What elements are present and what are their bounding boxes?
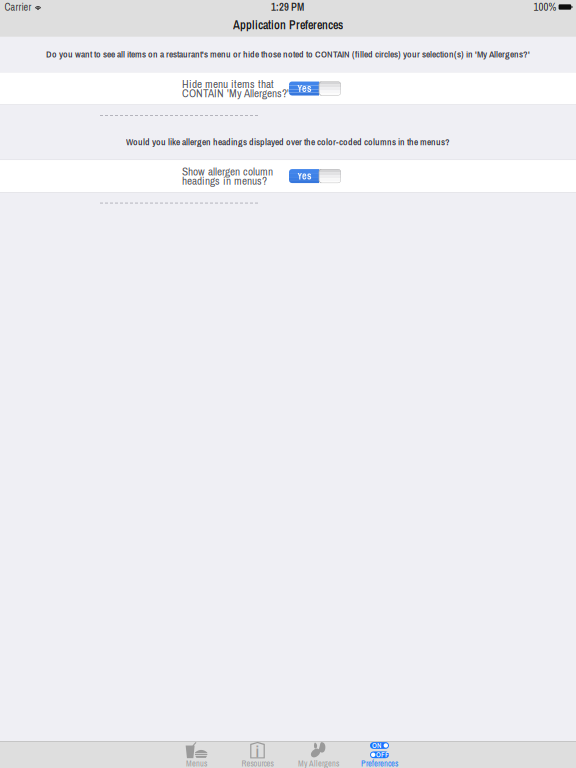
staticText: Preferences: [361, 758, 398, 768]
staticText: My Allergens: [298, 758, 339, 768]
staticText: Yes: [297, 169, 311, 183]
button[interactable]: i: [227, 741, 288, 768]
staticText: i: [255, 741, 259, 763]
staticText: ON: [372, 740, 381, 750]
button[interactable]: Menus: [166, 741, 227, 768]
staticText: Application Preferences: [233, 17, 343, 33]
button[interactable]: ON: [349, 741, 410, 768]
staticText: headings in menus?: [182, 173, 267, 188]
staticText: Hide menu items that: [182, 76, 274, 91]
staticText: Carrier: [4, 0, 31, 14]
staticText: Show allergen column: [182, 164, 273, 179]
button[interactable]: Show allergen column: [0, 160, 576, 192]
staticText: Yes: [297, 81, 311, 95]
staticText: Resources: [241, 758, 273, 768]
button[interactable]: My Allergens: [288, 741, 349, 768]
staticText: 1:29 PM: [271, 0, 304, 14]
staticText: OFF: [376, 750, 389, 760]
staticText: Do you want to see all items on a restau…: [46, 48, 530, 60]
button[interactable]: Hide menu items that: [0, 72, 576, 104]
staticText: CONTAIN 'My Allergens?': [182, 86, 289, 101]
staticText: 100%: [533, 0, 556, 14]
staticText: Would you like allergen headings display…: [126, 135, 450, 148]
staticText: Menus: [186, 758, 207, 768]
